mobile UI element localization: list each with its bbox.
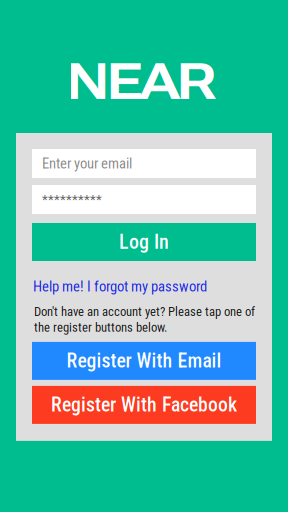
- button[interactable]: Help me! I forgot my password: [32, 278, 256, 295]
- button[interactable]: Log In: [32, 223, 256, 261]
- button[interactable]: Register With Email: [32, 342, 256, 380]
- staticText: Register With Facebook: [51, 393, 237, 416]
- staticText: **********: [42, 192, 102, 207]
- staticText: Enter your email: [42, 155, 132, 172]
- staticText: Log In: [119, 230, 169, 254]
- button[interactable]: Register With Facebook: [32, 386, 256, 424]
- staticText: Register With Email: [66, 349, 221, 372]
- staticText: Don't have an account yet? Please tap on…: [34, 304, 255, 319]
- staticText: Help me! I forgot my password: [33, 278, 207, 295]
- staticText: the register buttons below.: [34, 320, 167, 335]
- staticText: NEAR: [66, 52, 216, 112]
